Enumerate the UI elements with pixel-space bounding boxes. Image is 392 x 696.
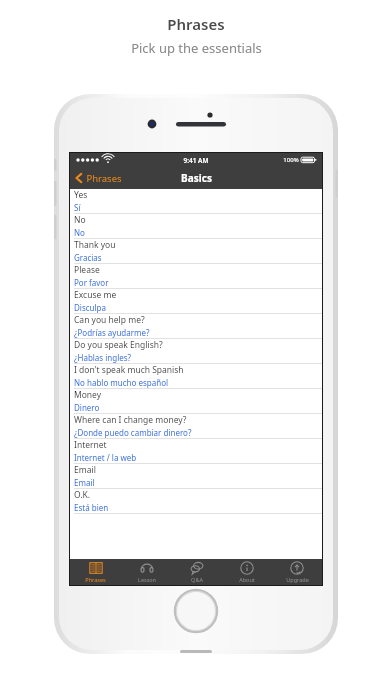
staticText: 100% xyxy=(283,156,299,164)
button[interactable]: Phrases xyxy=(70,559,121,585)
staticText: Email xyxy=(74,464,318,476)
button[interactable]: Excuse me xyxy=(70,289,322,314)
staticText: Please xyxy=(74,264,318,276)
staticText: Where can I change money? xyxy=(74,414,318,426)
staticText: Excuse me xyxy=(74,289,318,301)
staticText: About xyxy=(239,576,255,583)
staticText: Email xyxy=(74,477,318,488)
staticText: 9:41 AM xyxy=(183,156,209,165)
staticText: Por favor xyxy=(74,277,318,288)
staticText: Sí xyxy=(74,202,318,213)
staticText: No hablo mucho español xyxy=(74,377,318,388)
button[interactable]: Lesson xyxy=(121,559,172,585)
staticText: I don't speak much Spanish xyxy=(74,364,318,376)
staticText: Can you help me? xyxy=(74,314,318,326)
button[interactable]: Where can I change money? xyxy=(70,414,322,439)
button[interactable]: Q&A xyxy=(172,559,222,585)
staticText: Basics xyxy=(181,171,212,185)
staticText: No xyxy=(74,214,318,226)
staticText: Phrases xyxy=(167,14,225,34)
staticText: ¿Podrías ayudarme? xyxy=(74,327,318,338)
staticText: Internet xyxy=(74,439,318,451)
staticText: Upgrade xyxy=(286,576,309,583)
staticText: No xyxy=(74,227,318,238)
staticText: Q&A xyxy=(191,576,203,583)
button[interactable]: Do you speak English? xyxy=(70,339,322,364)
button[interactable]: Internet xyxy=(70,439,322,464)
staticText: O.K. xyxy=(74,489,318,501)
button[interactable]: Thank you xyxy=(70,239,322,264)
button[interactable]: About xyxy=(222,559,272,585)
staticText: Thank you xyxy=(74,239,318,251)
staticText: Está bien xyxy=(74,502,318,513)
staticText: Dinero xyxy=(74,402,318,413)
button[interactable]: I don't speak much Spanish xyxy=(70,364,322,389)
button[interactable]: Can you help me? xyxy=(70,314,322,339)
button[interactable]: No xyxy=(70,214,322,239)
button[interactable]: O.K. xyxy=(70,489,322,514)
staticText: ¿Hablas ingles? xyxy=(74,352,318,363)
staticText: Pick up the essentials xyxy=(131,39,262,57)
staticText: Money xyxy=(74,389,318,401)
staticText: Gracias xyxy=(74,252,318,263)
staticText: Internet / la web xyxy=(74,452,318,463)
staticText: Disculpa xyxy=(74,302,318,313)
button[interactable]: Upgrade xyxy=(272,559,322,585)
button[interactable]: Email xyxy=(70,464,322,489)
staticText: Yes xyxy=(74,189,318,201)
staticText: ¿Donde puedo cambiar dinero? xyxy=(74,427,318,438)
button[interactable]: Please xyxy=(70,264,322,289)
staticText: Lesson xyxy=(138,576,156,583)
button[interactable]: Money xyxy=(70,389,322,414)
staticText: Phrases xyxy=(85,576,106,583)
button[interactable]: Yes xyxy=(70,189,322,214)
staticText: Do you speak English? xyxy=(74,339,318,351)
button[interactable]: Phrases xyxy=(70,167,130,189)
staticText: Phrases xyxy=(86,172,122,185)
